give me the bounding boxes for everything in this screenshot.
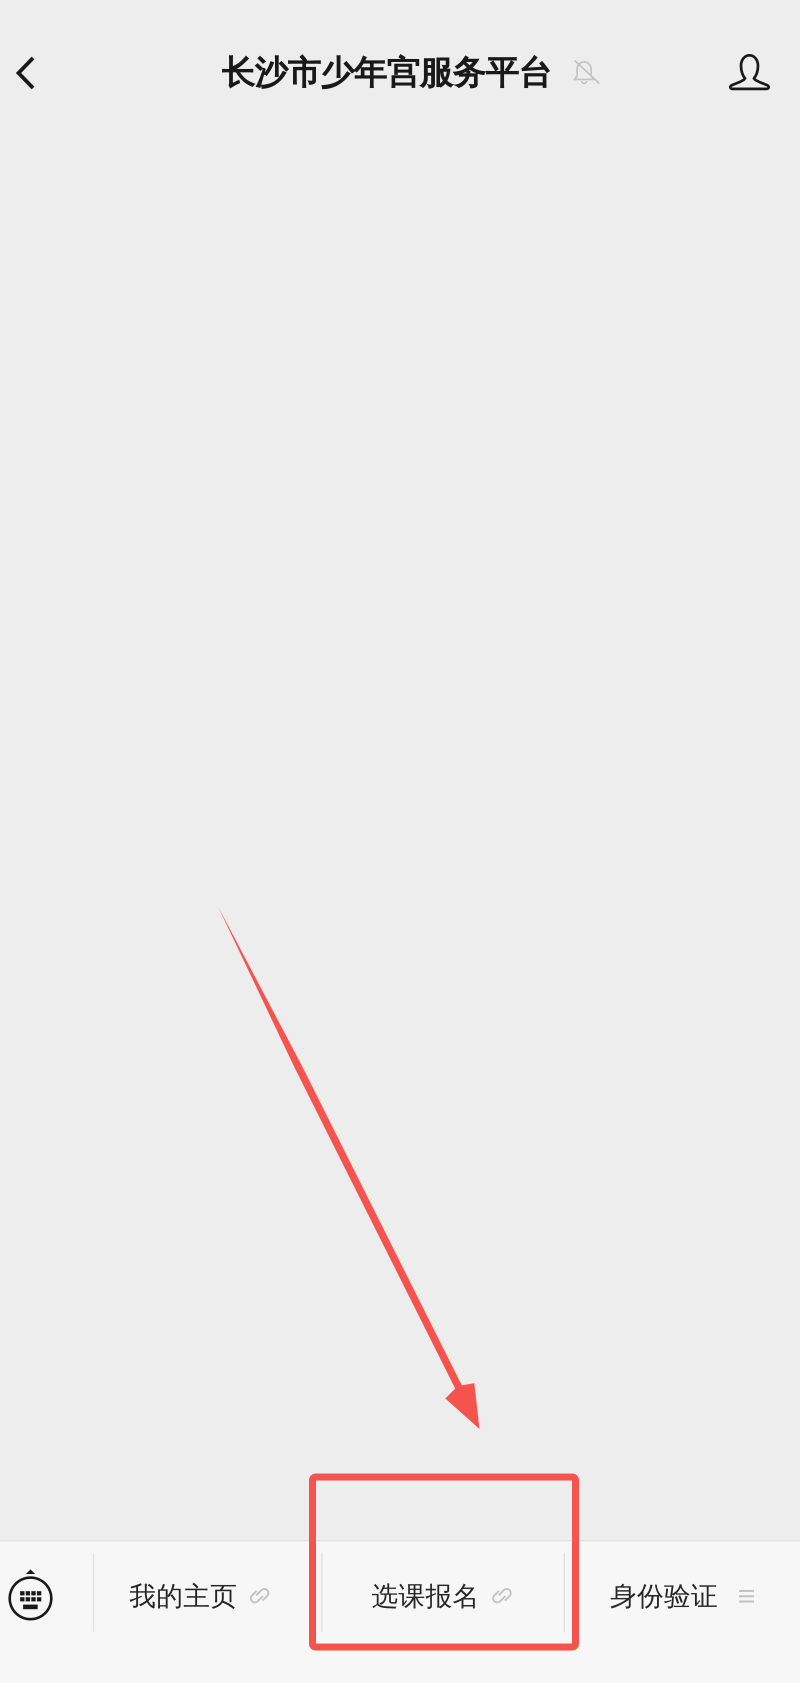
staticText: 身份验证 <box>610 1580 718 1613</box>
staticText: 我的主页 <box>129 1580 237 1613</box>
button[interactable]: 选课报名 <box>323 1541 564 1651</box>
button[interactable]: Back <box>0 31 52 115</box>
button[interactable]: 我的主页 <box>94 1541 321 1651</box>
staticText: 选课报名 <box>372 1580 480 1613</box>
button[interactable]: Keyboard <box>0 1543 61 1649</box>
button[interactable]: Profile <box>700 31 800 115</box>
button[interactable]: 身份验证 <box>565 1541 800 1651</box>
staticText: 长沙市少年宫服务平台 <box>221 52 551 93</box>
